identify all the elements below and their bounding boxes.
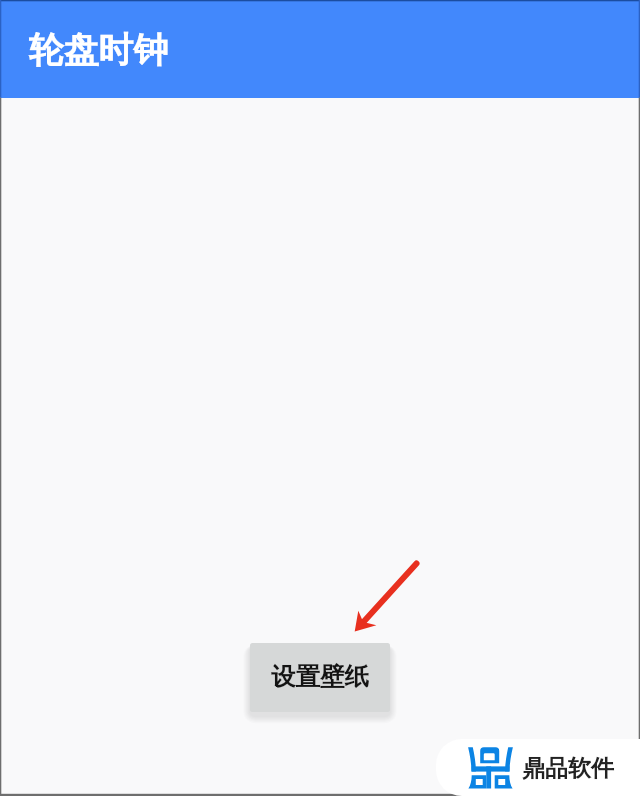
button[interactable]: 鼎品软件 logo (436, 739, 640, 796)
button[interactable]: 设置壁纸 (250, 643, 390, 712)
staticText: 设置壁纸 (271, 661, 369, 692)
staticText: 鼎品软件 (522, 754, 614, 783)
staticText: 轮盘时钟 (29, 28, 169, 72)
other: Annotation arrow pointing to the set wal… (0, 0, 640, 796)
other: 鼎品软件 logo (468, 746, 513, 789)
